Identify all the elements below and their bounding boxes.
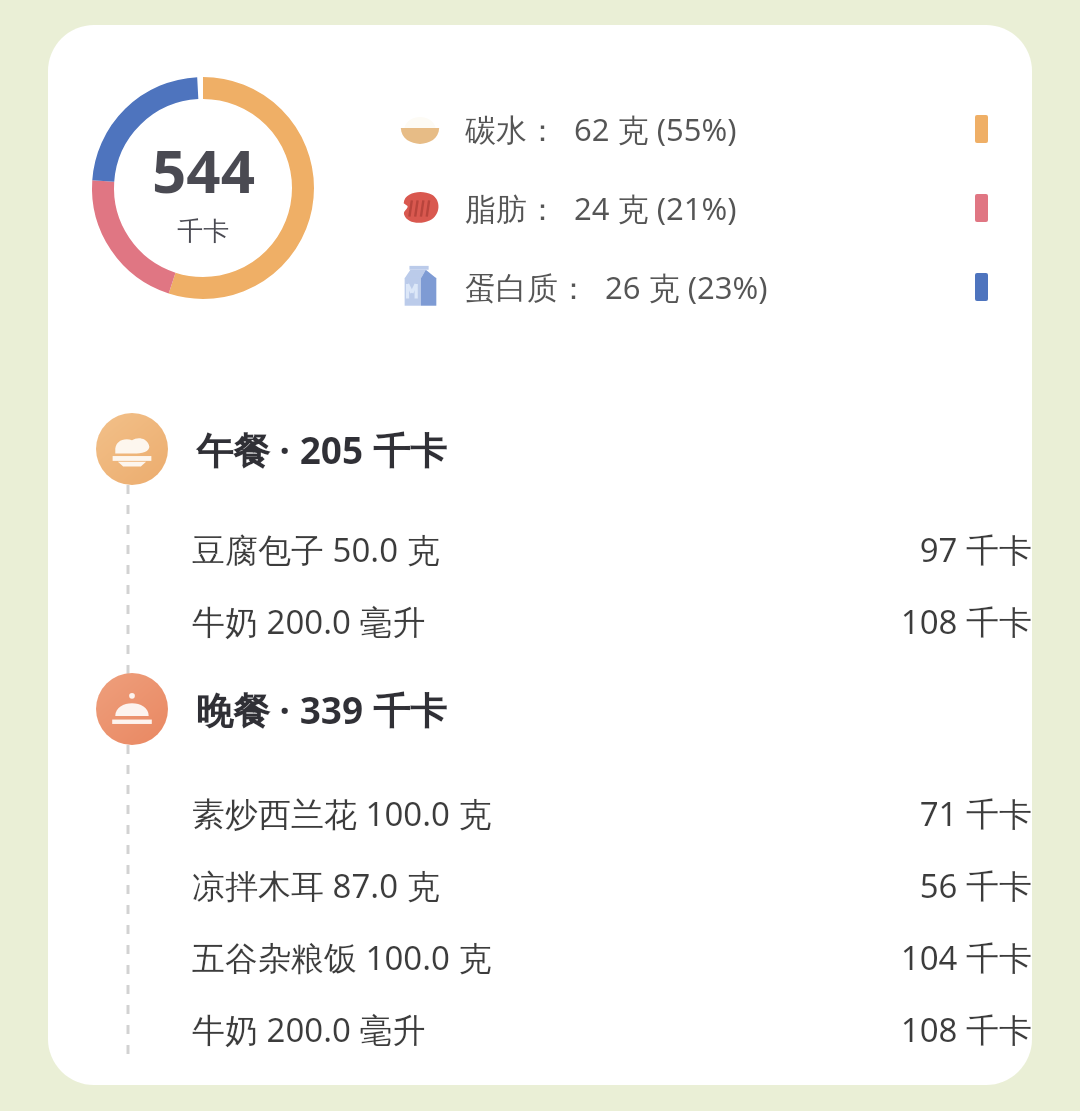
button[interactable]: 碳水： 62 克 (55%) xyxy=(393,97,983,161)
button[interactable]: 晚餐 · 339 千卡 xyxy=(96,670,976,748)
staticText: 豆腐包子 50.0 克 xyxy=(192,527,440,572)
staticText: 凉拌木耳 87.0 克 xyxy=(192,863,440,908)
button[interactable]: 豆腐包子 50.0 克 xyxy=(192,521,1032,577)
staticText: 544 xyxy=(152,129,255,211)
button[interactable]: 凉拌木耳 87.0 克 xyxy=(192,857,1032,913)
staticText: 97 千卡 xyxy=(919,527,1032,572)
button[interactable]: 午餐 · 205 千卡 xyxy=(96,410,976,488)
staticText: 牛奶 200.0 毫升 xyxy=(192,1007,426,1052)
staticText: 104 千卡 xyxy=(900,935,1032,980)
staticText: 蛋白质： 26 克 (23%) xyxy=(465,266,768,308)
staticText: 午餐 · 205 千卡 xyxy=(196,424,447,475)
button[interactable]: 牛奶 200.0 毫升 xyxy=(192,593,1032,649)
staticText: 晚餐 · 339 千卡 xyxy=(196,684,447,735)
button[interactable]: 素炒西兰花 100.0 克 xyxy=(192,785,1032,841)
staticText: 碳水： 62 克 (55%) xyxy=(465,108,737,150)
staticText: 108 千卡 xyxy=(900,1007,1032,1052)
button[interactable]: 蛋白质： 26 克 (23%) xyxy=(393,255,983,319)
staticText: 56 千卡 xyxy=(919,863,1032,908)
button[interactable]: 牛奶 200.0 毫升 xyxy=(192,1001,1032,1057)
staticText: 牛奶 200.0 毫升 xyxy=(192,599,426,644)
button[interactable]: 脂肪： 24 克 (21%) xyxy=(393,176,983,240)
staticText: 千卡 xyxy=(177,215,229,248)
staticText: 素炒西兰花 100.0 克 xyxy=(192,791,492,836)
button[interactable]: 五谷杂粮饭 100.0 克 xyxy=(192,929,1032,985)
staticText: 五谷杂粮饭 100.0 克 xyxy=(192,935,492,980)
staticText: 脂肪： 24 克 (21%) xyxy=(465,187,737,229)
staticText: 71 千卡 xyxy=(919,791,1032,836)
staticText: 108 千卡 xyxy=(900,599,1032,644)
